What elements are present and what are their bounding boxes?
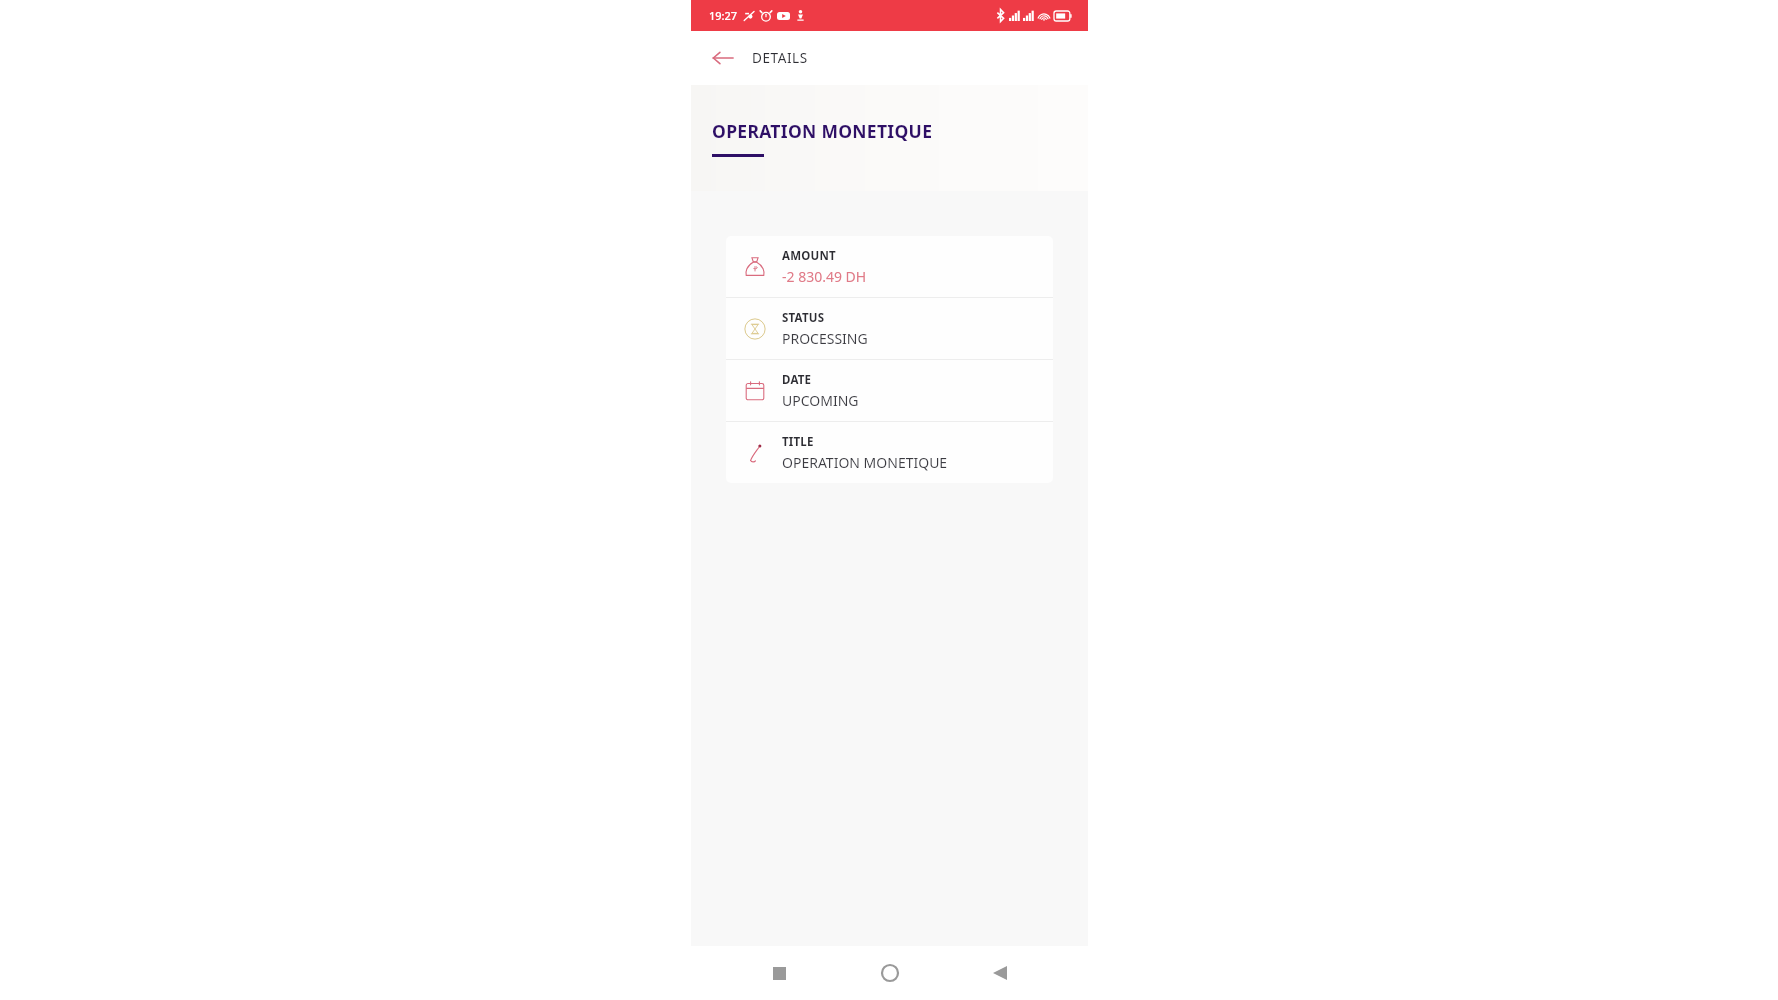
button[interactable]: DATE: [726, 360, 1053, 421]
button[interactable]: AMOUNT: [726, 236, 1053, 297]
staticText: AMOUNT: [782, 248, 836, 264]
staticText: TITLE: [782, 434, 814, 450]
staticText: OPERATION MONETIQUE: [712, 119, 933, 143]
button[interactable]: Recents: [757, 951, 801, 995]
button[interactable]: STATUS: [726, 298, 1053, 359]
staticText: OPERATION MONETIQUE: [782, 453, 948, 472]
staticText: DETAILS: [752, 49, 808, 67]
button[interactable]: Back: [978, 951, 1022, 995]
button[interactable]: Back: [703, 38, 743, 78]
button[interactable]: TITLE: [726, 422, 1053, 483]
staticText: UPCOMING: [782, 391, 859, 410]
staticText: PROCESSING: [782, 329, 868, 348]
button[interactable]: Home: [868, 951, 912, 995]
staticText: 19:27: [709, 8, 738, 23]
staticText: DATE: [782, 372, 812, 388]
staticText: -2 830.49 DH: [782, 267, 867, 286]
staticText: STATUS: [782, 310, 825, 326]
